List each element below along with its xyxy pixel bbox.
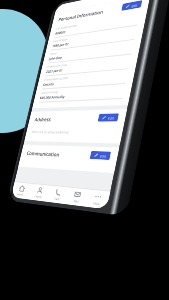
staticText: 2021-Jan-01 bbox=[46, 68, 64, 74]
staticText: Calls bbox=[54, 197, 60, 201]
staticText: Actual Earnings bbox=[41, 90, 59, 95]
staticText: A00001 bbox=[55, 30, 66, 36]
staticText: Employment Date bbox=[47, 63, 68, 69]
button[interactable]: Edit bbox=[97, 113, 119, 122]
staticText: Clients bbox=[34, 194, 43, 199]
staticText: 1980-Jan-01 bbox=[52, 41, 70, 48]
button[interactable]: Edit bbox=[121, 0, 142, 11]
staticText: John Doe bbox=[49, 55, 63, 61]
staticText: Home bbox=[17, 192, 24, 197]
staticText: Edit bbox=[100, 153, 107, 158]
button[interactable]: Mail bbox=[65, 188, 89, 207]
staticText: There are no active addresses bbox=[31, 130, 70, 134]
button[interactable]: Clients bbox=[28, 184, 50, 202]
staticText: Edit bbox=[108, 115, 115, 119]
staticText: Name bbox=[50, 51, 58, 56]
button[interactable]: Edit bbox=[89, 151, 111, 160]
staticText: More bbox=[93, 201, 101, 206]
staticText: Address bbox=[34, 116, 52, 122]
staticText: Date of Birth bbox=[53, 38, 68, 43]
staticText: Mail bbox=[73, 199, 80, 204]
staticText: Communication bbox=[26, 149, 61, 157]
staticText: Certificate Number bbox=[56, 24, 78, 30]
staticText: Edit bbox=[131, 3, 138, 7]
button[interactable]: More bbox=[85, 190, 110, 209]
button[interactable]: Calls bbox=[46, 186, 69, 204]
staticText: Employment Location bbox=[44, 76, 69, 82]
staticText: $40,000 Annually bbox=[39, 94, 66, 100]
staticText: Personal Information bbox=[58, 8, 104, 22]
staticText: Ontario bbox=[43, 82, 55, 87]
button[interactable]: Home bbox=[11, 182, 32, 199]
